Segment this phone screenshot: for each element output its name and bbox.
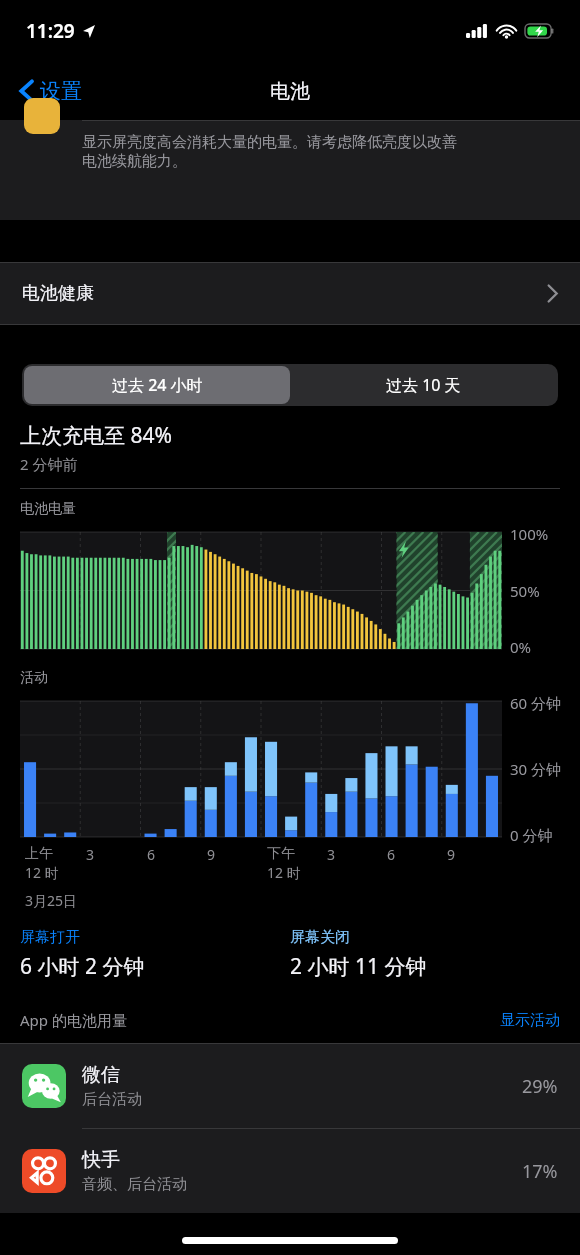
staticText: 屏幕打开 bbox=[20, 928, 80, 947]
button[interactable]: 微信 bbox=[0, 1044, 580, 1128]
staticText: 显示屏亮度高会消耗大量的电量。请考虑降低亮度以改善 bbox=[82, 133, 457, 152]
staticText: 6 bbox=[147, 845, 156, 864]
staticText: 100% bbox=[510, 524, 549, 544]
staticText: 0 分钟 bbox=[510, 825, 553, 845]
staticText: 17% bbox=[522, 1159, 558, 1184]
button[interactable]: 电池健康 bbox=[0, 263, 580, 324]
staticText: 30 分钟 bbox=[510, 759, 562, 779]
staticText: 9 bbox=[447, 845, 456, 864]
staticText: 3 bbox=[86, 845, 95, 864]
button[interactable]: 快手 bbox=[0, 1129, 580, 1213]
staticText: 6 bbox=[387, 845, 396, 864]
staticText: 12 时 bbox=[267, 863, 301, 882]
staticText: 过去 10 天 bbox=[386, 374, 461, 396]
staticText: 50% bbox=[510, 581, 540, 601]
staticText: 下午 bbox=[267, 845, 295, 863]
staticText: 电池电量 bbox=[20, 500, 76, 518]
button[interactable]: 过去 10 天 bbox=[290, 366, 556, 404]
staticText: 12 时 bbox=[25, 863, 59, 882]
button[interactable]: 设置 bbox=[14, 72, 88, 110]
staticText: 9 bbox=[207, 845, 216, 864]
staticText: 显示活动 bbox=[500, 1011, 560, 1030]
staticText: 音频、后台活动 bbox=[82, 1175, 187, 1194]
staticText: 60 分钟 bbox=[510, 693, 562, 713]
staticText: 3月25日 bbox=[25, 891, 78, 910]
staticText: 0% bbox=[510, 637, 532, 657]
staticText: 2 小时 11 分钟 bbox=[290, 952, 427, 981]
button[interactable]: 显示活动 bbox=[500, 1011, 560, 1030]
button[interactable]: 过去 24 小时 bbox=[24, 366, 290, 404]
staticText: 快手 bbox=[82, 1148, 120, 1172]
staticText: 上次充电至 84% bbox=[20, 421, 172, 450]
staticText: 29% bbox=[522, 1074, 558, 1099]
staticText: 后台活动 bbox=[82, 1090, 142, 1109]
staticText: 活动 bbox=[20, 669, 48, 687]
staticText: 上午 bbox=[25, 845, 53, 863]
staticText: 2 分钟前 bbox=[20, 454, 78, 474]
staticText: 屏幕关闭 bbox=[290, 928, 350, 947]
staticText: 11:29 bbox=[26, 18, 75, 44]
staticText: 3 bbox=[327, 845, 336, 864]
staticText: 电池续航能力。 bbox=[82, 152, 187, 171]
staticText: 6 小时 2 分钟 bbox=[20, 952, 145, 981]
staticText: App 的电池用量 bbox=[20, 1010, 127, 1030]
staticText: 过去 24 小时 bbox=[112, 374, 203, 396]
staticText: 设置 bbox=[40, 78, 82, 104]
staticText: 电池健康 bbox=[22, 282, 94, 305]
staticText: 电池 bbox=[270, 79, 310, 104]
staticText: 微信 bbox=[82, 1063, 120, 1087]
